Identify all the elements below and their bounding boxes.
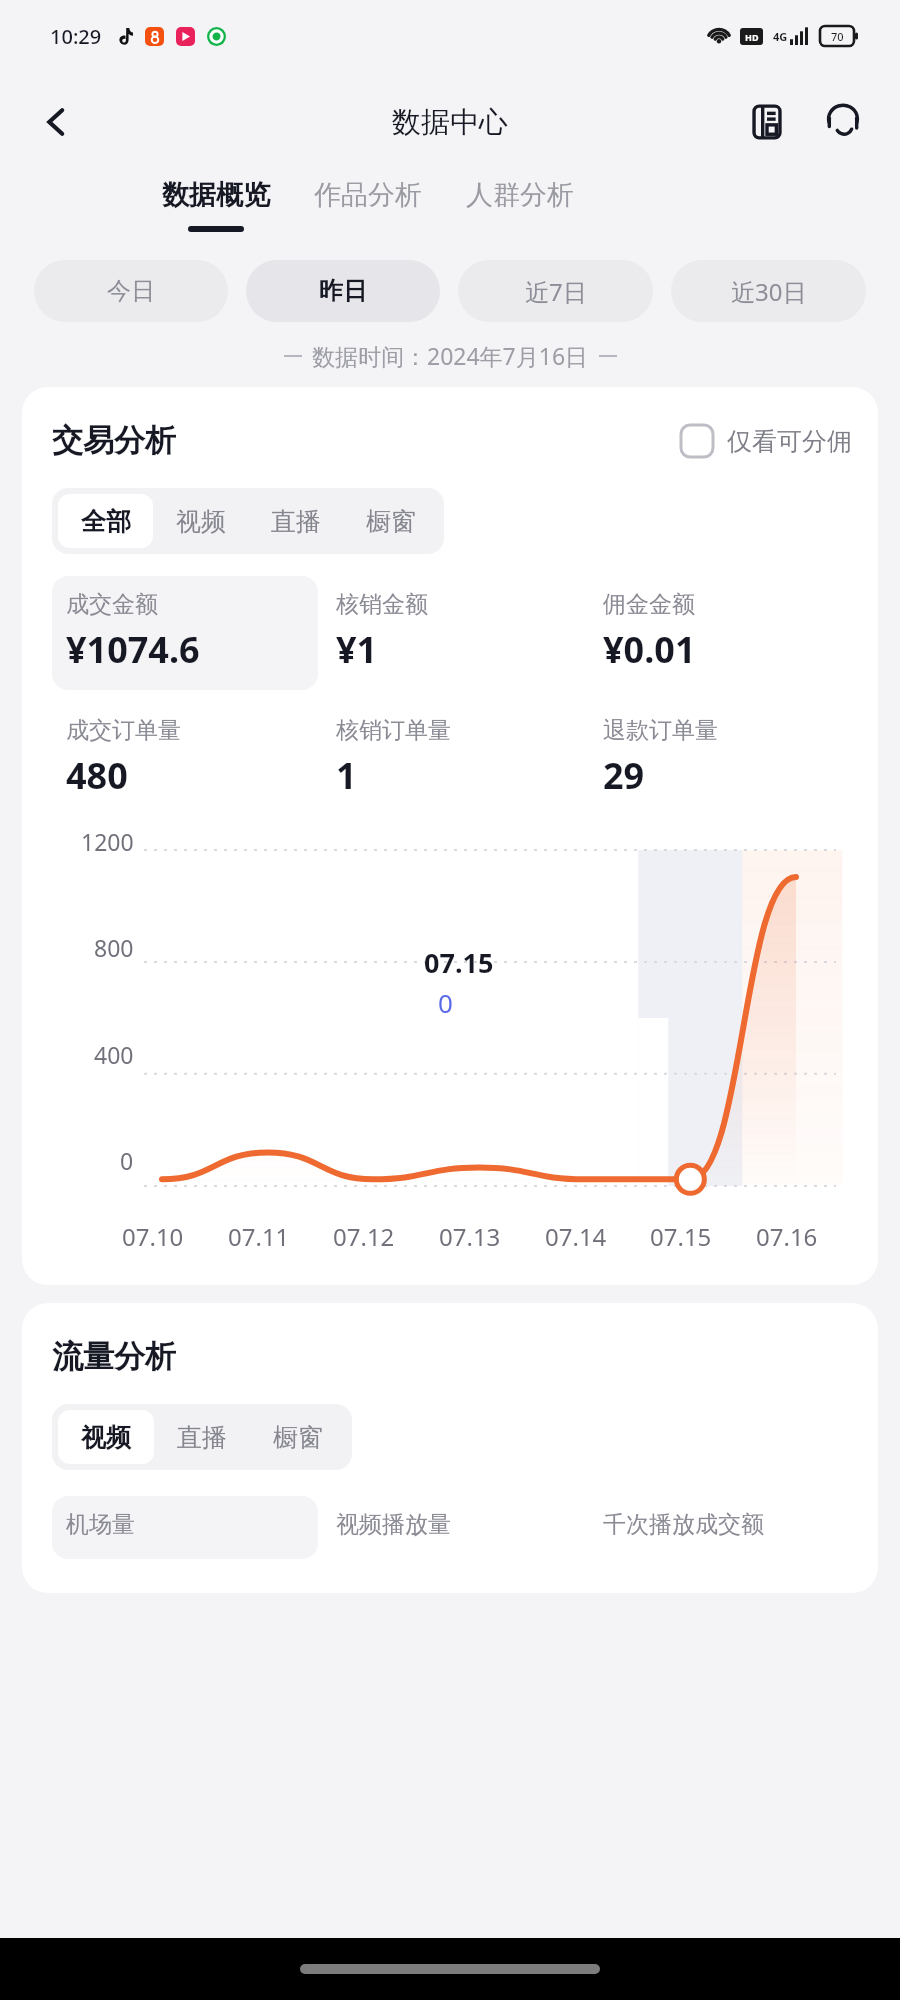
staticText: 今日 <box>107 276 155 306</box>
staticText: 07.11 <box>228 1220 318 1253</box>
staticText: 07.14 <box>545 1220 635 1253</box>
button[interactable]: 订单记录 <box>736 91 798 153</box>
staticText: 仅看可分佣 <box>727 426 852 457</box>
staticText: 视频 <box>176 506 226 537</box>
staticText: 10:29 <box>50 23 102 50</box>
staticText: HD <box>745 31 759 43</box>
button[interactable]: 今日 <box>34 260 228 322</box>
staticText: 4G <box>773 29 788 44</box>
staticText: 0 <box>438 985 453 1020</box>
staticText: 流量分析 <box>52 1337 176 1376</box>
staticText: 橱窗 <box>366 506 416 537</box>
button[interactable]: 仅看可分佣 <box>681 425 852 457</box>
staticText: 07.15 <box>424 944 494 981</box>
button[interactable]: 视频 <box>58 1410 154 1464</box>
button[interactable]: 成交金额 <box>52 576 318 690</box>
staticText: 近7日 <box>525 275 587 308</box>
staticText: 07.13 <box>439 1220 529 1253</box>
button[interactable]: 橱窗 <box>250 1410 346 1464</box>
staticText: 1200 <box>81 826 134 857</box>
staticText: 数据中心 <box>392 104 508 141</box>
staticText: 全部 <box>81 506 131 537</box>
staticText: 作品分析 <box>314 178 422 212</box>
button[interactable]: 全部 <box>58 494 153 548</box>
staticText: 核销金额 <box>336 590 428 619</box>
staticText: 直播 <box>271 506 321 537</box>
button[interactable]: 核销订单量 <box>336 716 585 800</box>
button[interactable]: 数据概览 <box>140 172 292 238</box>
staticText: 07.16 <box>756 1220 846 1253</box>
staticText: 07.10 <box>122 1220 212 1253</box>
staticText: 数据时间：2024年7月16日 <box>312 340 589 371</box>
button[interactable]: 退款订单量 <box>603 716 852 800</box>
staticText: 数据概览 <box>162 178 270 212</box>
staticText: 800 <box>94 932 134 963</box>
staticText: 480 <box>66 751 128 800</box>
staticText: 机场量 <box>66 1510 135 1539</box>
button[interactable]: 人群分析 <box>444 172 596 238</box>
staticText: ¥1074.6 <box>66 625 200 674</box>
staticText: 佣金金额 <box>603 590 695 619</box>
button[interactable]: 近7日 <box>458 260 653 322</box>
staticText: 成交金额 <box>66 590 158 619</box>
button[interactable]: 成交订单量 <box>66 716 318 800</box>
staticText: 视频 <box>81 1422 131 1453</box>
staticText: 交易分析 <box>52 421 176 460</box>
staticText: 07.15 <box>650 1220 740 1253</box>
staticText: 昨日 <box>319 276 367 306</box>
staticText: 1 <box>336 751 357 800</box>
staticText: 人群分析 <box>466 178 574 212</box>
button[interactable]: 昨日 <box>246 260 440 322</box>
staticText: 橱窗 <box>273 1422 323 1453</box>
button[interactable]: Back <box>28 94 84 150</box>
staticText: 千次播放成交额 <box>603 1510 764 1539</box>
staticText: 退款订单量 <box>603 716 718 745</box>
staticText: 直播 <box>177 1422 227 1453</box>
staticText: 近30日 <box>731 275 807 308</box>
staticText: ¥1 <box>336 625 378 674</box>
staticText: 0 <box>120 1145 134 1176</box>
button[interactable]: 作品分析 <box>292 172 444 238</box>
staticText: 成交订单量 <box>66 716 181 745</box>
staticText: 核销订单量 <box>336 716 451 745</box>
staticText: 70 <box>831 29 844 44</box>
button[interactable]: 直播 <box>154 1410 250 1464</box>
button[interactable]: 机场量 <box>52 1496 318 1559</box>
staticText: 29 <box>603 751 645 800</box>
button[interactable]: 客服 <box>812 91 874 153</box>
staticText: ¥0.01 <box>603 625 696 674</box>
staticText: 视频播放量 <box>336 1510 451 1539</box>
button[interactable]: 直播 <box>248 494 343 548</box>
button[interactable]: 视频 <box>153 494 248 548</box>
button[interactable]: 橱窗 <box>343 494 438 548</box>
staticText: 400 <box>94 1039 134 1070</box>
staticText: 07.12 <box>333 1220 423 1253</box>
button[interactable]: 近30日 <box>671 260 866 322</box>
